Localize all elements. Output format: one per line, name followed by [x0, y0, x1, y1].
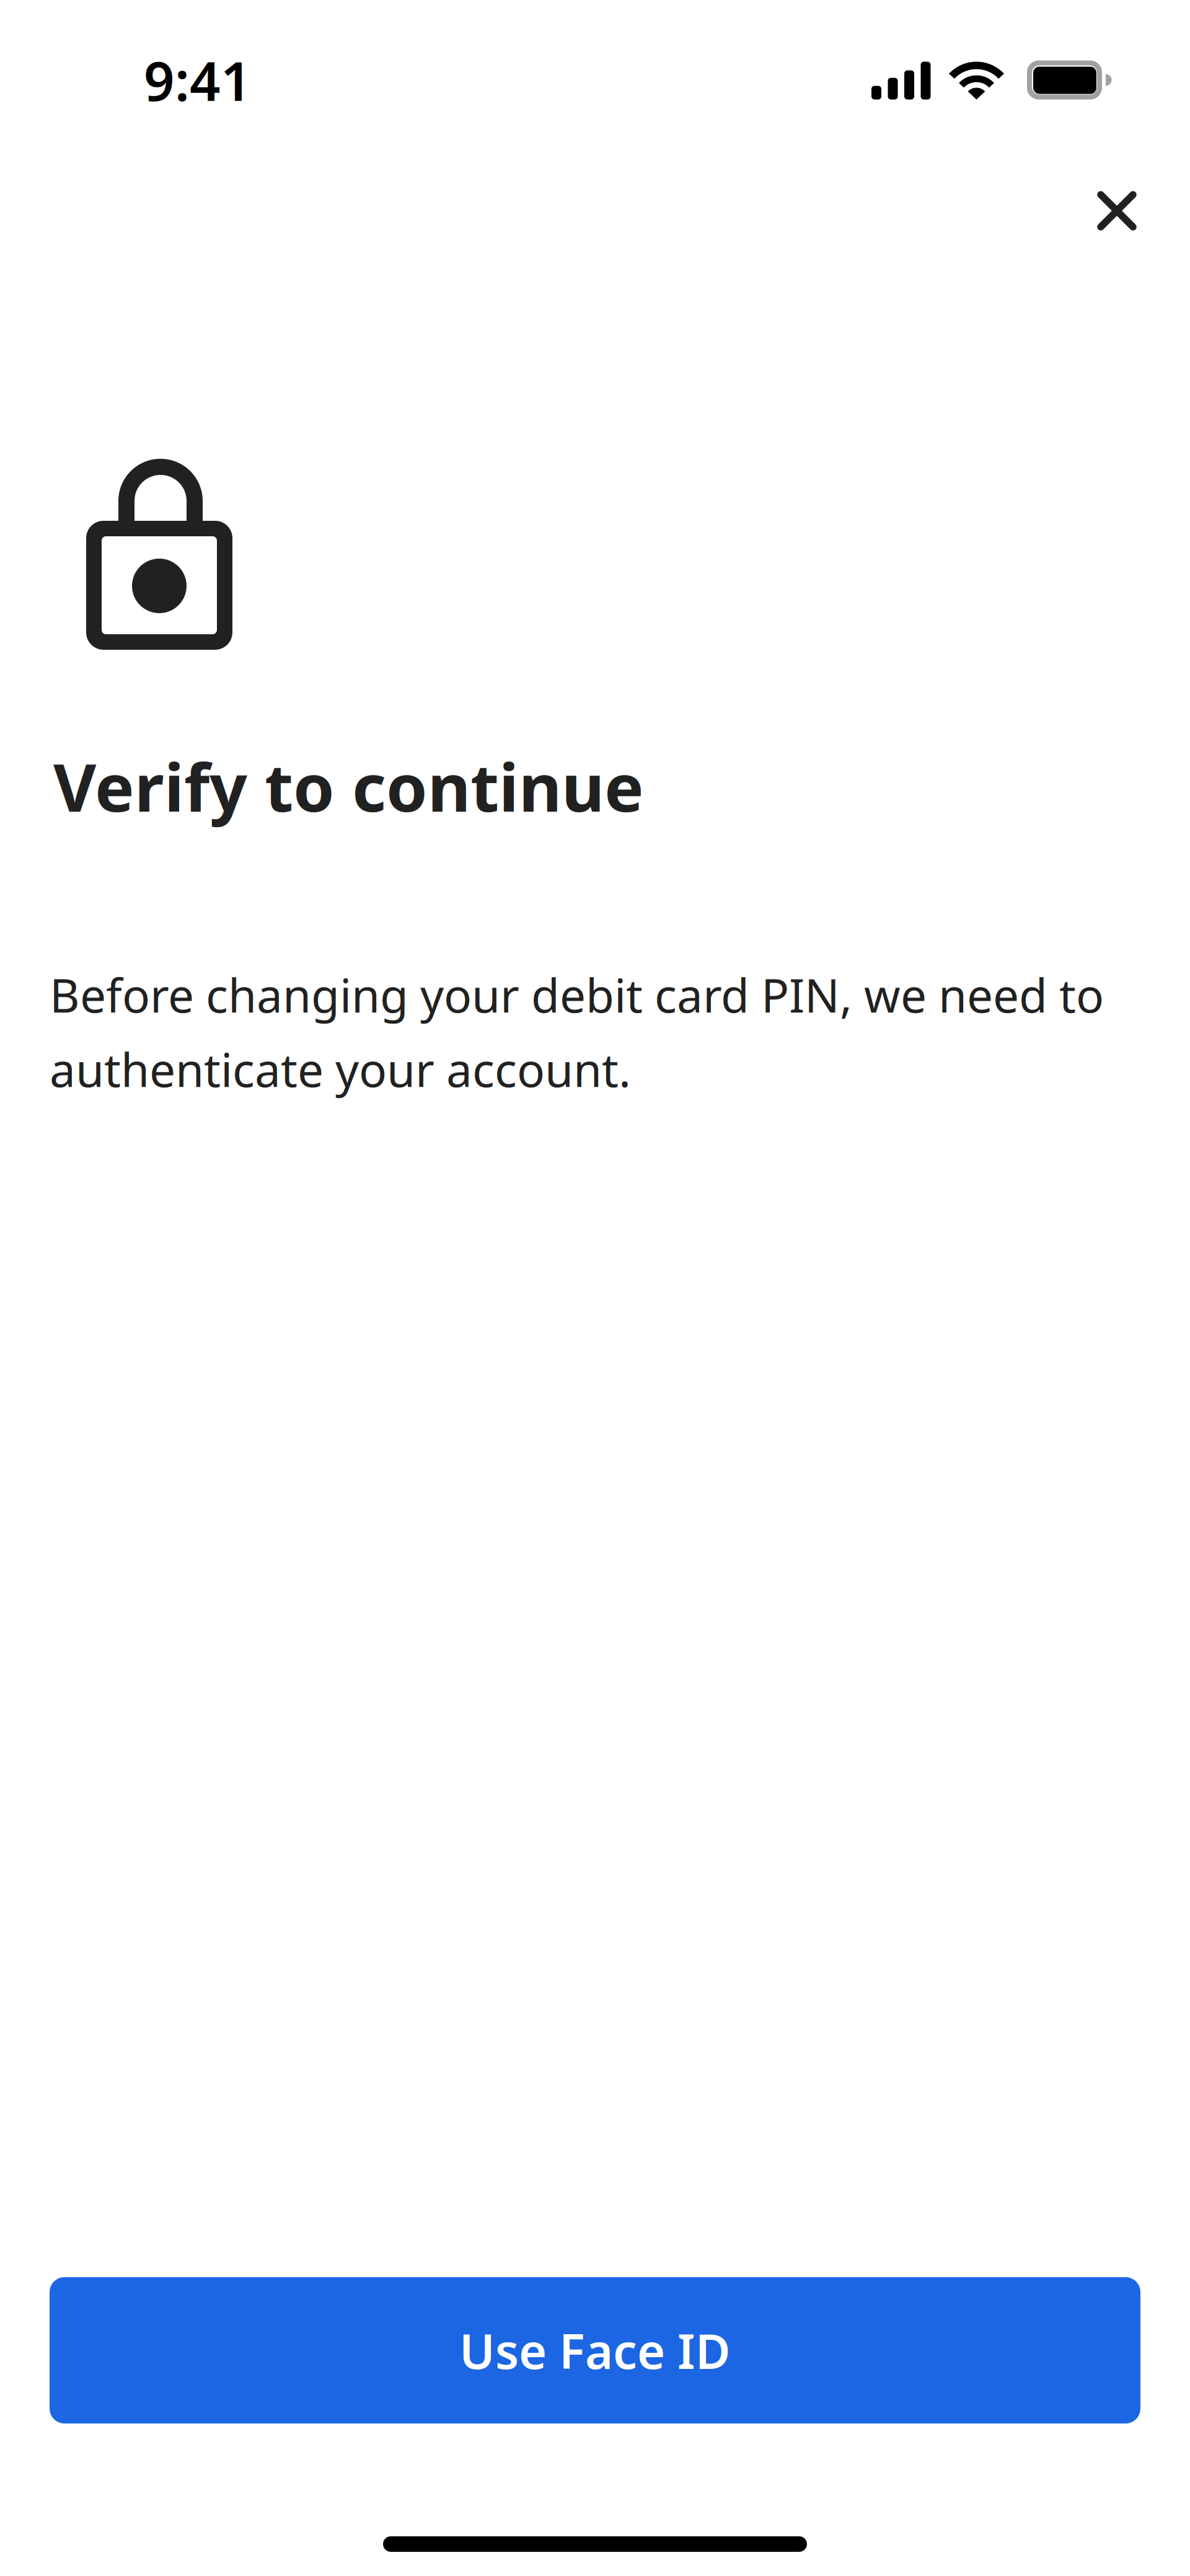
staticText: Verify to continue: [53, 742, 644, 830]
button[interactable]: Use Face ID: [50, 2277, 1140, 2423]
staticText: 9:41: [144, 44, 252, 116]
staticText: Before changing your debit card PIN, we …: [50, 964, 1104, 1100]
staticText: Use Face ID: [459, 2319, 731, 2382]
button[interactable]: Close: [1077, 170, 1157, 251]
